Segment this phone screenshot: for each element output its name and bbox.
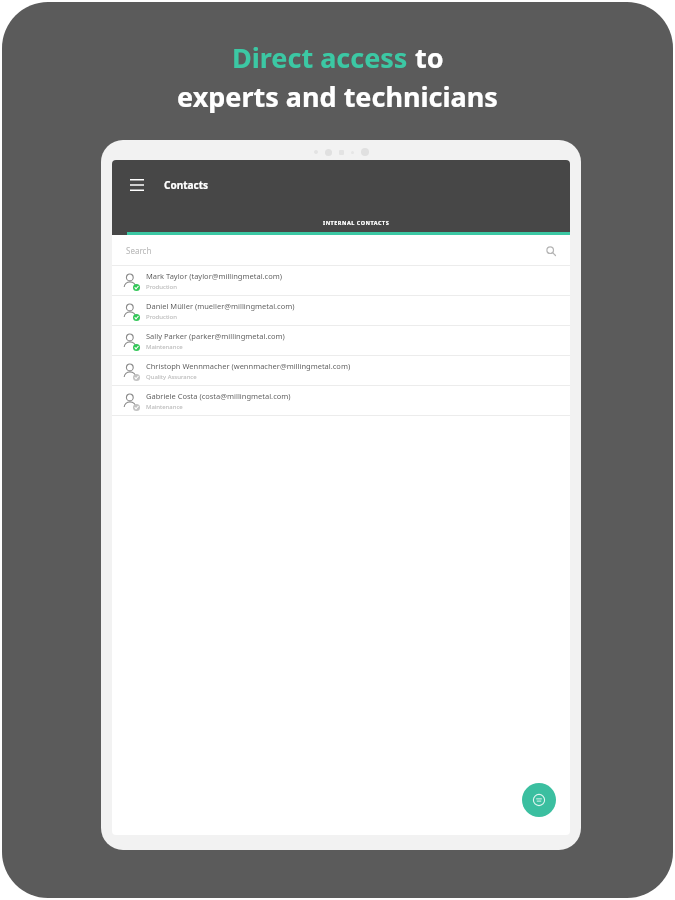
staticText: Sally Parker (parker@millingmetal.com) (146, 331, 285, 341)
staticText: experts and technicians (177, 78, 498, 115)
staticText: to (408, 39, 444, 76)
button[interactable]: New message (522, 783, 556, 817)
staticText: Maintenance (146, 343, 183, 351)
staticText: Contacts (164, 178, 209, 192)
button[interactable]: Daniel Müller (mueller@millingmetal.com) (112, 296, 570, 326)
button[interactable]: Open navigation menu (126, 174, 148, 196)
button[interactable]: Christoph Wennmacher (wennmacher@milling… (112, 356, 570, 386)
staticText: Quality Assurance (146, 373, 197, 381)
button[interactable]: Search (112, 235, 570, 266)
button[interactable]: Mark Taylor (taylor@millingmetal.com) (112, 266, 570, 296)
staticText: Christoph Wennmacher (wennmacher@milling… (146, 361, 351, 371)
button[interactable]: Sally Parker (parker@millingmetal.com) (112, 326, 570, 356)
staticText: Production (146, 313, 177, 321)
staticText: Production (146, 283, 177, 291)
staticText: Maintenance (146, 403, 183, 411)
staticText: INTERNAL CONTACTS (323, 219, 390, 226)
other: Search (546, 246, 556, 256)
staticText: Mark Taylor (taylor@millingmetal.com) (146, 271, 282, 281)
staticText: Daniel Müller (mueller@millingmetal.com) (146, 301, 295, 311)
button[interactable]: INTERNAL CONTACTS (127, 213, 570, 235)
staticText: Gabriele Costa (costa@millingmetal.com) (146, 391, 291, 401)
staticText: Direct access (232, 39, 408, 76)
button[interactable]: Gabriele Costa (costa@millingmetal.com) (112, 386, 570, 416)
staticText: Search (126, 245, 152, 256)
